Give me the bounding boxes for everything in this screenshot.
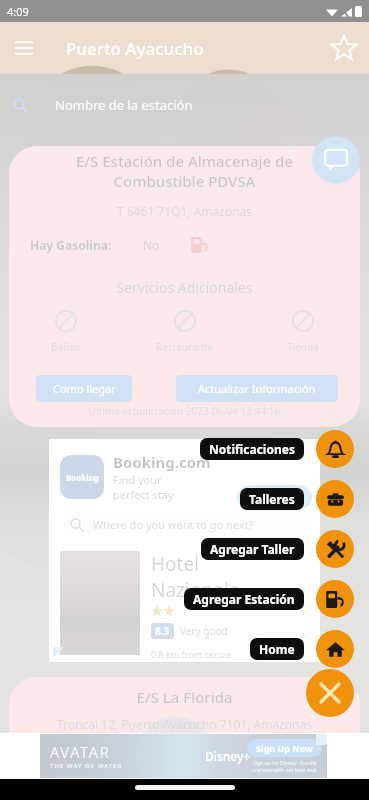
staticText: No	[143, 237, 160, 253]
staticText: Booking.com	[113, 452, 211, 472]
staticText: 8.3	[155, 624, 170, 638]
button[interactable]: Restaurante	[151, 310, 219, 354]
staticText: 0.8 km from centre	[151, 648, 232, 660]
button[interactable]: INSTALL	[237, 485, 312, 510]
staticText: E/S Estación de Almacenaje de Combustibl…	[53, 151, 316, 191]
button[interactable]: Booking	[49, 439, 320, 662]
button[interactable]: Agregar Estación	[184, 574, 354, 624]
staticText: Disney+	[205, 748, 251, 764]
button[interactable]: Sign Up Now	[247, 739, 322, 757]
button[interactable]: Agregar Taller	[201, 524, 354, 574]
staticText: perfect stay	[113, 487, 174, 502]
button[interactable]: Actualizar Información	[176, 375, 338, 402]
staticText: Sign Up Now	[256, 742, 313, 754]
staticText: T 6461 71Q1, Amazonas	[9, 203, 360, 219]
staticText: 4:09	[7, 4, 29, 19]
button[interactable]: Chat	[312, 136, 360, 184]
button[interactable]: AVATAR	[40, 734, 327, 778]
staticText: Sign up for Disney+ Bundle	[253, 760, 317, 767]
staticText: and save with our best deal.	[252, 767, 318, 774]
staticText: Notificaciones	[209, 441, 295, 457]
staticText: Booking	[66, 472, 99, 483]
staticText: AVATAR	[50, 742, 111, 762]
staticText: Where do you want to go next?	[93, 517, 254, 532]
staticText: Baños	[51, 340, 81, 354]
button[interactable]: Como llegar	[36, 375, 132, 402]
staticText: Agregar Taller	[210, 541, 295, 557]
staticText: Talleres	[249, 491, 295, 507]
button[interactable]: E/S Estación de Almacenaje de Combustibl…	[9, 146, 360, 427]
button[interactable]: Tienda	[269, 310, 337, 354]
button[interactable]: Close menu	[306, 669, 354, 717]
button[interactable]: Notificaciones	[200, 424, 354, 474]
staticText: Hotel	[151, 551, 200, 577]
staticText: INSTALL	[252, 490, 297, 505]
staticText: Restaurante	[156, 340, 214, 354]
staticText: Tienda	[287, 340, 319, 354]
staticText: Nombre de la estación	[55, 96, 193, 114]
button[interactable]: Home	[250, 624, 354, 674]
button[interactable]: Baños	[32, 310, 100, 354]
staticText: Puerto Ayacucho	[66, 37, 204, 60]
staticText: Find your	[113, 472, 162, 487]
button[interactable]: Nombre de la estación	[13, 91, 369, 119]
staticText: Troncal 12, Puerto Ayacucho 7101, Amazon…	[9, 716, 360, 732]
button[interactable]: E/S La Florida	[9, 677, 360, 782]
button[interactable]: Open navigation menu	[6, 30, 42, 66]
staticText: Hay Gasolina:	[30, 237, 112, 253]
staticText: Como llegar	[53, 381, 116, 396]
staticText: E/S La Florida	[54, 687, 315, 707]
button[interactable]: Talleres	[240, 474, 354, 524]
staticText: Nazionale	[151, 577, 240, 603]
staticText: Very good	[180, 624, 228, 638]
staticText: THE WAY OF WATER	[50, 762, 123, 770]
staticText: Hay Gasolina:	[25, 748, 107, 764]
staticText: Última actualización 2023-06-04 13:44:16	[9, 404, 360, 418]
staticText: Home	[259, 641, 295, 657]
button[interactable]: Favorite	[327, 31, 361, 65]
staticText: Agregar Estación	[193, 591, 295, 607]
staticText: Servicios Adicionales	[9, 278, 360, 297]
staticText: Actualizar Información	[198, 381, 316, 396]
